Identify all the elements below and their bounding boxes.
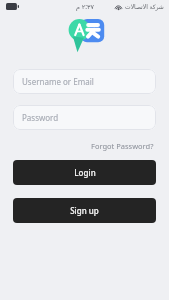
staticText: Sign up (70, 205, 99, 216)
button[interactable]: Username or Email (13, 69, 156, 94)
button[interactable]: Sign up (13, 198, 156, 223)
staticText: Login (74, 167, 96, 178)
staticText: شركة الاتصالات (125, 3, 164, 11)
staticText: Forgot Password? (91, 141, 154, 151)
button[interactable]: Forgot Password? (89, 139, 156, 153)
button[interactable]: Login (13, 160, 156, 185)
staticText: Password (22, 112, 59, 123)
button[interactable]: Password (13, 105, 156, 130)
staticText: Username or Email (22, 76, 94, 87)
staticText: ٢:٣٧ م (76, 2, 94, 11)
